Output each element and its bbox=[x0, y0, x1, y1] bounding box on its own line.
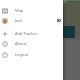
button[interactable]: Jack bbox=[0, 15, 63, 26]
button[interactable]: Tracker detail card bbox=[54, 26, 75, 38]
button[interactable]: Logout bbox=[0, 49, 63, 60]
staticText: Logout bbox=[15, 52, 29, 57]
staticText: Add Tracker bbox=[15, 31, 38, 36]
staticText: Map bbox=[15, 8, 24, 13]
button[interactable]: About bbox=[0, 38, 63, 49]
button[interactable]: Add Tracker bbox=[0, 28, 63, 39]
button[interactable]: Map bbox=[0, 5, 63, 16]
staticText: Jack bbox=[15, 18, 23, 23]
staticText: About bbox=[15, 41, 27, 46]
